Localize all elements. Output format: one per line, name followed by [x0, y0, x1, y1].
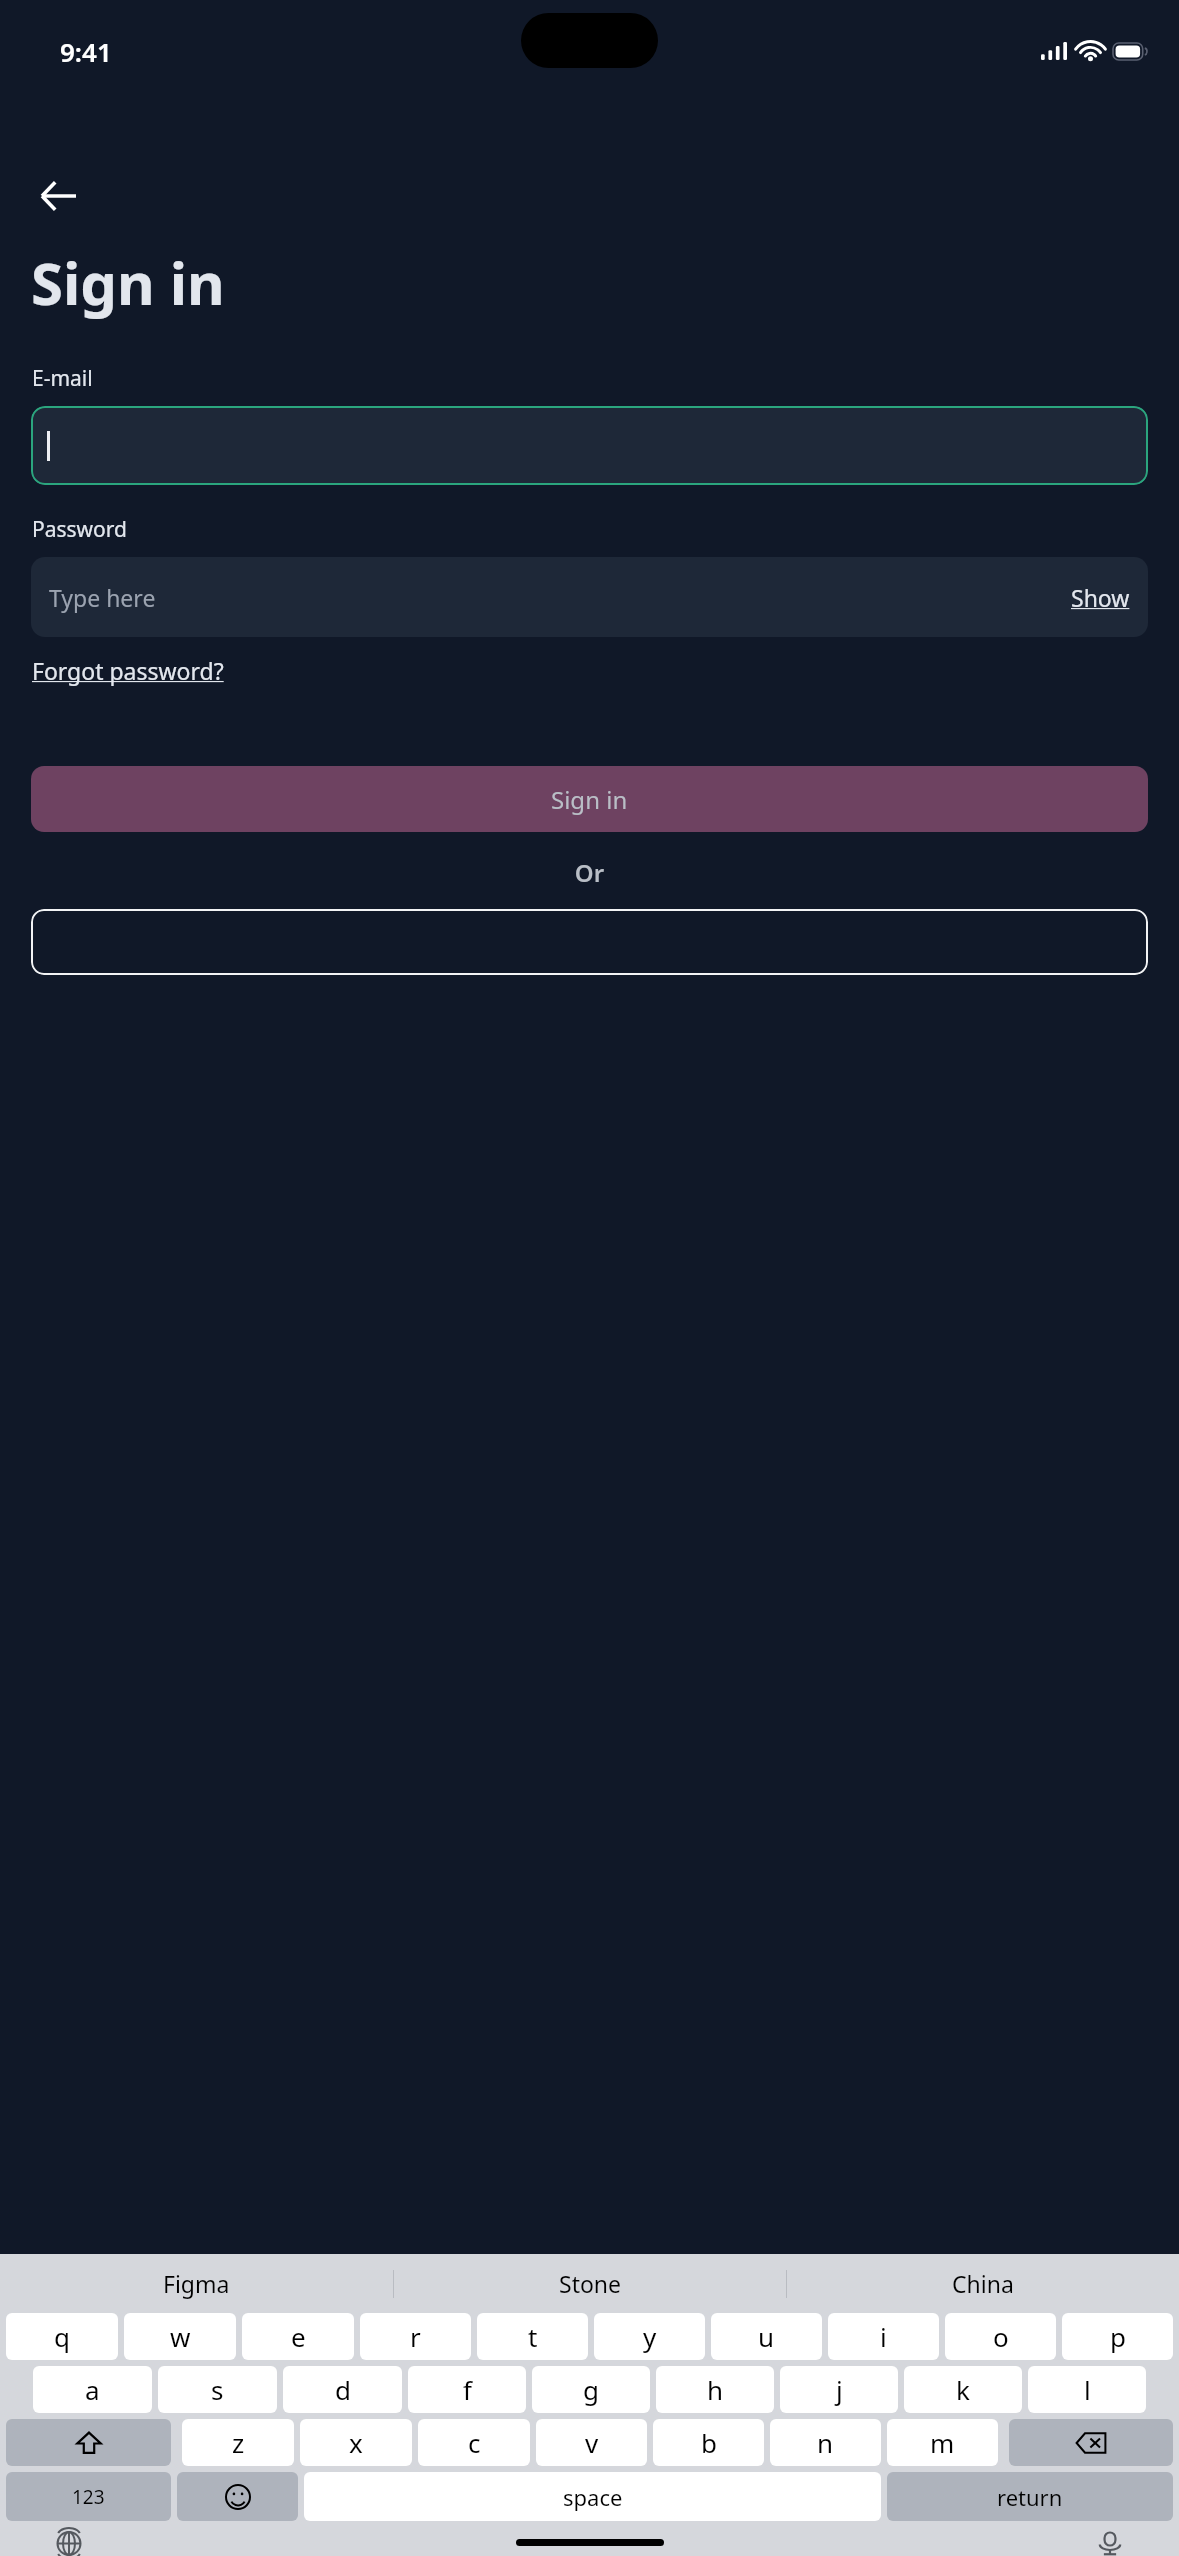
button[interactable]: e	[242, 2313, 354, 2360]
staticText: i	[880, 2319, 887, 2354]
staticText: Sign in	[31, 243, 225, 322]
staticText: r	[410, 2319, 421, 2354]
button[interactable]: Forgot password?	[32, 655, 224, 686]
staticText: z	[232, 2425, 245, 2460]
staticText: 123	[72, 2484, 105, 2510]
staticText: b	[701, 2425, 717, 2460]
staticText: E-mail	[32, 364, 93, 393]
staticText: Type here	[49, 582, 156, 613]
staticText: q	[54, 2319, 70, 2354]
button[interactable]: g	[532, 2366, 650, 2413]
staticText: k	[956, 2372, 970, 2407]
staticText: Stone	[559, 2268, 622, 2299]
button[interactable]: Emoji	[177, 2472, 298, 2521]
button[interactable]: c	[418, 2419, 530, 2466]
staticText: g	[583, 2372, 599, 2407]
button[interactable]: a	[33, 2366, 152, 2413]
button[interactable]: t	[477, 2313, 588, 2360]
button[interactable]: Type here	[31, 557, 1148, 637]
staticText: t	[528, 2319, 538, 2354]
button[interactable]: k	[904, 2366, 1022, 2413]
staticText: China	[952, 2268, 1014, 2299]
button[interactable]: j	[780, 2366, 898, 2413]
button[interactable]: s	[158, 2366, 277, 2413]
button[interactable]: l	[1028, 2366, 1146, 2413]
button[interactable]: Backspace	[1009, 2419, 1173, 2466]
staticText: p	[1110, 2319, 1126, 2354]
button[interactable]: Change keyboard language	[48, 2531, 90, 2556]
button[interactable]: o	[945, 2313, 1056, 2360]
staticText: a	[85, 2372, 100, 2407]
button[interactable]: f	[408, 2366, 526, 2413]
staticText: d	[335, 2372, 351, 2407]
button[interactable]	[31, 406, 1148, 485]
staticText: s	[211, 2372, 224, 2407]
button[interactable]: Shift	[6, 2419, 171, 2466]
staticText: v	[585, 2425, 599, 2460]
staticText: Show	[1071, 582, 1130, 613]
button[interactable]: 123	[6, 2472, 171, 2521]
button[interactable]: d	[283, 2366, 402, 2413]
button[interactable]: y	[594, 2313, 705, 2360]
staticText: n	[817, 2425, 834, 2460]
staticText: m	[930, 2425, 955, 2460]
staticText: Password	[32, 515, 127, 544]
button[interactable]: n	[770, 2419, 881, 2466]
staticText: u	[758, 2319, 775, 2354]
button[interactable]: Figma	[0, 2254, 393, 2313]
button[interactable]: i	[828, 2313, 939, 2360]
staticText: Figma	[163, 2268, 230, 2299]
staticText: x	[349, 2425, 363, 2460]
button[interactable]: Back	[30, 167, 88, 225]
staticText: w	[170, 2319, 191, 2354]
button[interactable]	[31, 909, 1148, 975]
staticText: c	[468, 2425, 481, 2460]
staticText: Forgot password?	[32, 655, 224, 686]
staticText: e	[291, 2319, 306, 2354]
staticText: h	[707, 2372, 724, 2407]
button[interactable]: Show	[1071, 582, 1130, 613]
button[interactable]: z	[182, 2419, 294, 2466]
staticText: Or	[0, 856, 1179, 889]
button[interactable]: b	[653, 2419, 764, 2466]
staticText: Sign in	[551, 783, 628, 816]
button[interactable]: space	[304, 2472, 881, 2521]
button[interactable]: Dictation	[1089, 2531, 1131, 2556]
button[interactable]: q	[6, 2313, 118, 2360]
button[interactable]: p	[1062, 2313, 1173, 2360]
button[interactable]: u	[711, 2313, 822, 2360]
button[interactable]: Stone	[394, 2254, 786, 2313]
button[interactable]: h	[656, 2366, 774, 2413]
button[interactable]: m	[887, 2419, 998, 2466]
button[interactable]: return	[887, 2472, 1173, 2521]
staticText: 9:41	[60, 34, 112, 69]
button[interactable]: v	[536, 2419, 647, 2466]
staticText: space	[563, 2482, 623, 2512]
staticText: o	[993, 2319, 1009, 2354]
staticText: y	[643, 2319, 657, 2354]
staticText: return	[997, 2482, 1063, 2512]
staticText: f	[463, 2372, 472, 2407]
button[interactable]: w	[124, 2313, 236, 2360]
staticText: j	[836, 2372, 843, 2407]
staticText: l	[1084, 2372, 1091, 2407]
button[interactable]: Sign in	[31, 766, 1148, 832]
button[interactable]: China	[787, 2254, 1179, 2313]
button[interactable]: x	[300, 2419, 412, 2466]
button[interactable]: r	[360, 2313, 471, 2360]
